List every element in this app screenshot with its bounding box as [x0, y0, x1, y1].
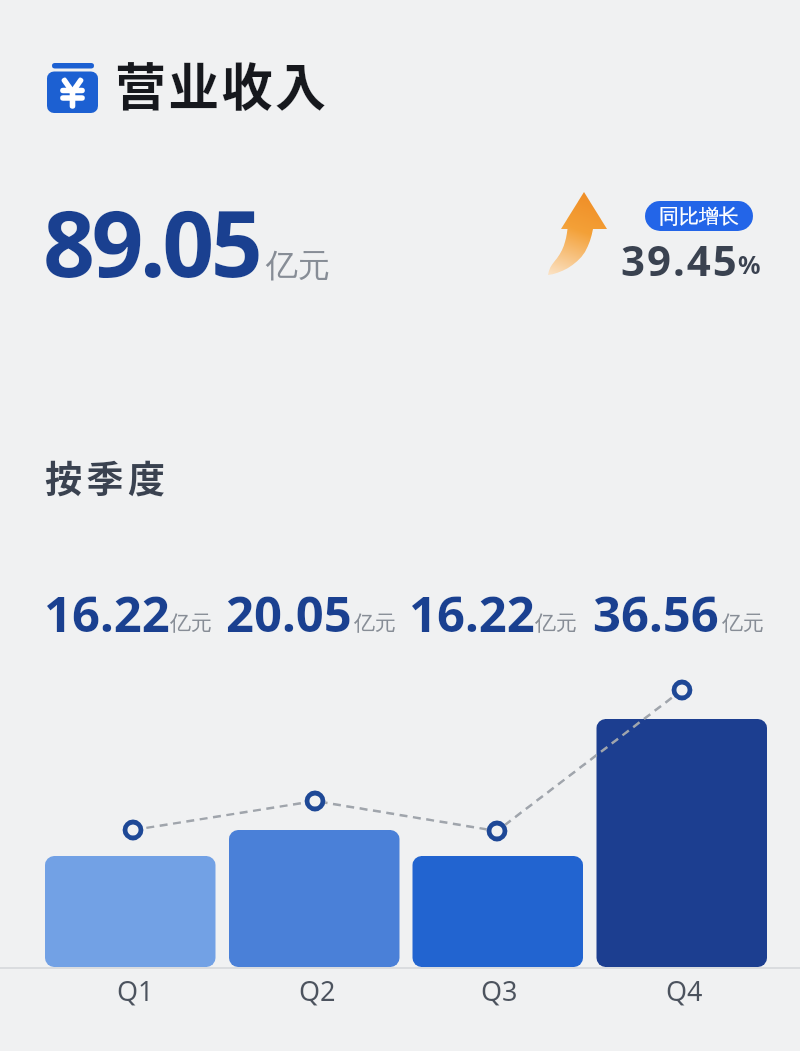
- staticText: 亿元: [266, 245, 330, 285]
- staticText: 36.56: [593, 580, 719, 647]
- staticText: 同比增长: [659, 204, 739, 229]
- staticText: %: [738, 247, 761, 281]
- staticText: 39.45: [621, 231, 739, 288]
- button[interactable]: Q2: [277, 972, 357, 1009]
- staticText: Q4: [666, 972, 703, 1009]
- staticText: Q2: [299, 972, 336, 1009]
- button[interactable]: 同比增长: [645, 201, 753, 231]
- staticText: Q1: [117, 972, 154, 1009]
- staticText: 亿元: [535, 610, 577, 636]
- staticText: 按季度: [45, 450, 170, 504]
- staticText: 亿元: [354, 610, 396, 636]
- button[interactable]: Q1: [95, 972, 175, 1009]
- button[interactable]: Q4: [644, 972, 724, 1009]
- staticText: 亿元: [170, 610, 212, 636]
- staticText: Q3: [481, 972, 518, 1009]
- button[interactable]: Q3: [459, 972, 539, 1009]
- staticText: 营业收入: [115, 47, 329, 121]
- staticText: 20.05: [226, 580, 352, 647]
- staticText: 16.22: [409, 580, 535, 647]
- staticText: 16.22: [44, 580, 170, 647]
- button[interactable]: [47, 63, 99, 113]
- staticText: 亿元: [722, 610, 764, 636]
- staticText: 89.05: [43, 180, 260, 304]
